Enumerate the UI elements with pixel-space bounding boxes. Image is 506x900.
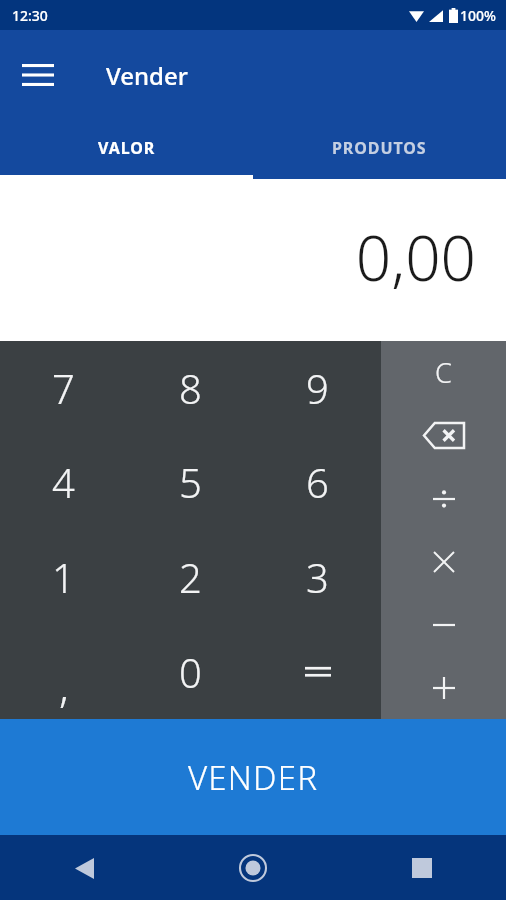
- button[interactable]: VENDER: [0, 719, 506, 835]
- button[interactable]: ,: [0, 624, 127, 719]
- button[interactable]: Minus: [381, 593, 506, 656]
- staticText: 7: [52, 361, 75, 415]
- button[interactable]: [254, 624, 381, 719]
- staticText: 6: [306, 455, 329, 509]
- staticText: 2: [179, 550, 202, 604]
- staticText: 4: [52, 455, 75, 509]
- button[interactable]: 7: [0, 341, 127, 435]
- staticText: 1: [52, 550, 75, 604]
- staticText: 3: [306, 550, 329, 604]
- button[interactable]: Multiply: [381, 530, 506, 593]
- staticText: VENDER: [188, 755, 319, 800]
- staticText: VALOR: [98, 137, 156, 159]
- staticText: Vender: [106, 59, 188, 92]
- button[interactable]: Menu: [10, 47, 66, 103]
- button[interactable]: 2: [127, 529, 254, 624]
- button[interactable]: 1: [0, 529, 127, 624]
- button[interactable]: VALOR: [0, 120, 253, 175]
- staticText: PRODUTOS: [332, 137, 427, 159]
- button[interactable]: PRODUTOS: [253, 120, 506, 175]
- staticText: 5: [179, 455, 202, 509]
- button[interactable]: 3: [254, 529, 381, 624]
- button[interactable]: Plus: [381, 656, 506, 719]
- staticText: 100%: [460, 6, 496, 25]
- staticText: 9: [306, 361, 329, 415]
- button[interactable]: Back: [58, 842, 110, 894]
- button[interactable]: Divide: [381, 467, 506, 530]
- staticText: 0,00: [355, 215, 476, 299]
- button[interactable]: 6: [254, 435, 381, 529]
- staticText: 0: [179, 645, 202, 699]
- button[interactable]: C: [381, 341, 506, 404]
- button[interactable]: Backspace: [381, 404, 506, 467]
- staticText: ,: [59, 655, 69, 715]
- button[interactable]: 9: [254, 341, 381, 435]
- button[interactable]: 8: [127, 341, 254, 435]
- button[interactable]: 5: [127, 435, 254, 529]
- button[interactable]: 0: [127, 624, 254, 719]
- button[interactable]: 4: [0, 435, 127, 529]
- button[interactable]: Recent apps: [396, 842, 448, 894]
- staticText: C: [435, 354, 452, 391]
- staticText: 12:30: [12, 6, 48, 25]
- staticText: 8: [179, 361, 202, 415]
- button[interactable]: Home: [227, 842, 279, 894]
